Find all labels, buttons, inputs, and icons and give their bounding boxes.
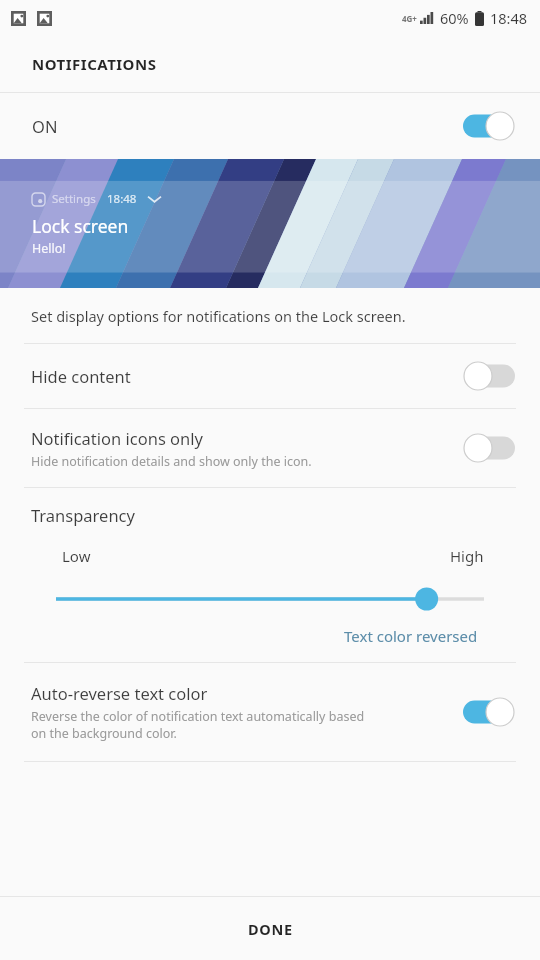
staticText: 4G+	[402, 13, 417, 24]
staticText: Hello!	[32, 240, 66, 257]
button[interactable]: Text color reversed	[0, 622, 540, 662]
staticText: Transparency	[31, 504, 135, 526]
button[interactable]: Hide content	[0, 344, 540, 408]
staticText: 18:48	[107, 191, 137, 207]
staticText: NOTIFICATIONS	[32, 54, 157, 74]
staticText: Text color reversed	[344, 626, 478, 646]
staticText: Hide notification details and show only …	[31, 453, 312, 470]
staticText: Settings	[52, 191, 96, 207]
staticText: DONE	[248, 919, 293, 939]
button[interactable]: ON	[0, 93, 540, 159]
staticText: 60%	[440, 8, 469, 28]
button[interactable]: DONE	[0, 897, 540, 960]
staticText: Hide content	[31, 365, 131, 387]
staticText: High	[450, 546, 484, 566]
staticText: 18:48	[490, 8, 528, 28]
staticText: Set display options for notifications on…	[31, 306, 406, 326]
staticText: Low	[62, 546, 91, 566]
button[interactable]: Auto-reverse text color	[0, 663, 540, 761]
staticText: Reverse the color of notification text a…	[31, 708, 365, 742]
button[interactable]: Transparency level slider	[0, 584, 540, 614]
staticText: Lock screen	[32, 214, 129, 238]
staticText: Notification icons only	[31, 427, 203, 449]
staticText: ON	[32, 115, 58, 137]
staticText: Auto-reverse text color	[31, 682, 208, 704]
button[interactable]: Notification icons only	[0, 409, 540, 487]
